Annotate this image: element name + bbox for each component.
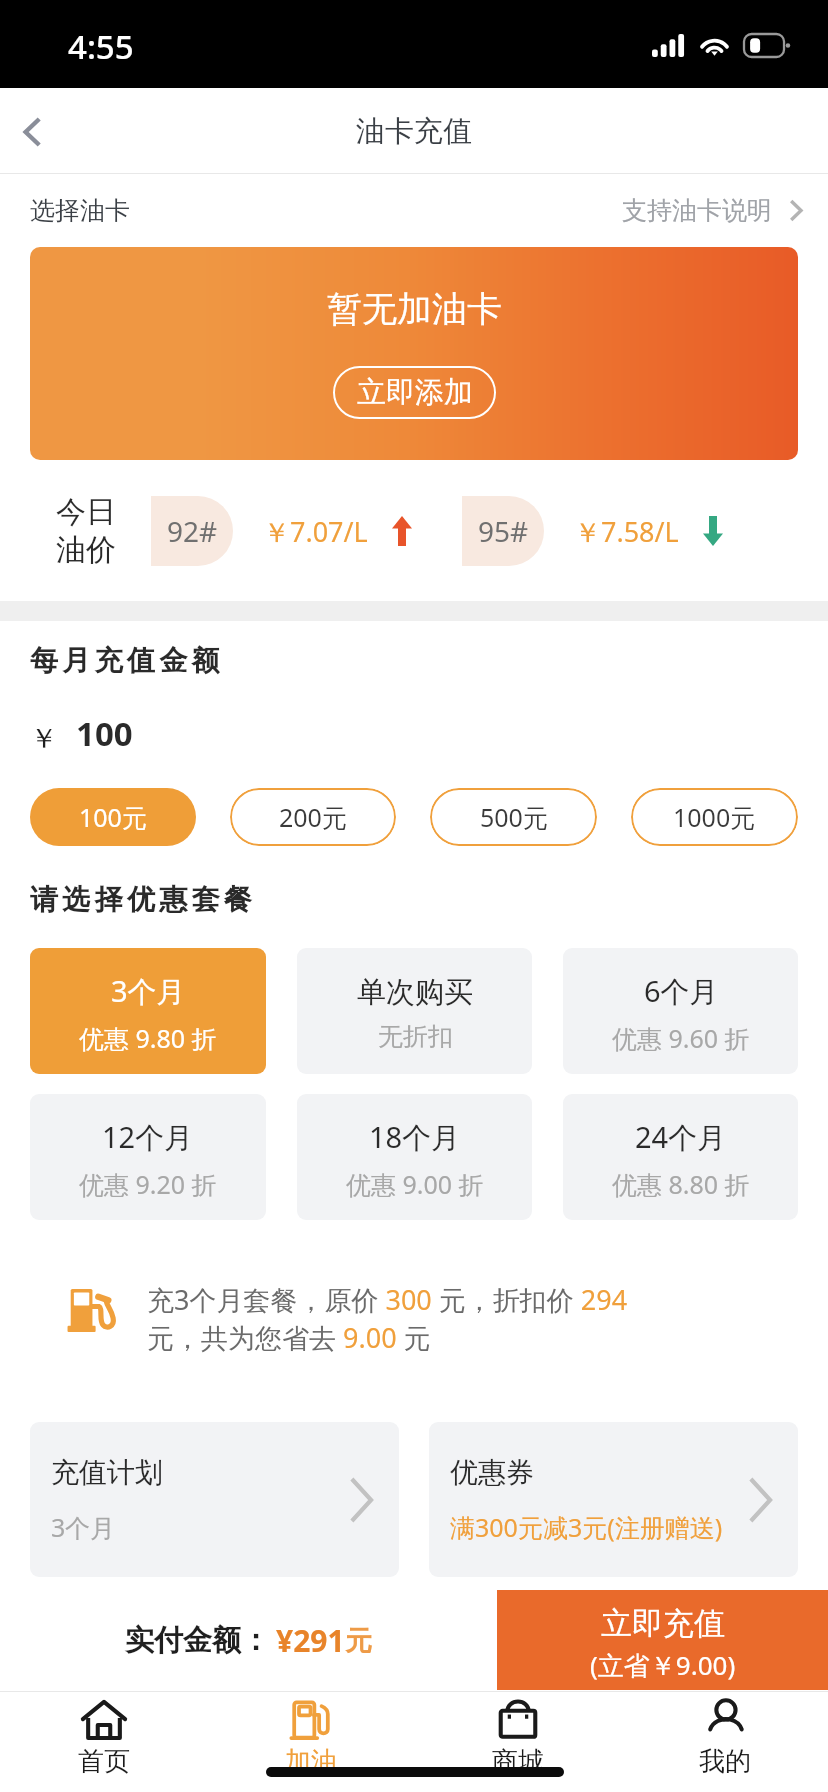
- button[interactable]: 商城: [414, 1692, 621, 1792]
- staticText: 每月充值金额: [30, 643, 224, 678]
- staticText: ￥7.58/L: [574, 513, 679, 550]
- staticText: 优惠 9.20 折: [79, 1167, 217, 1201]
- button[interactable]: 1000元: [631, 788, 798, 846]
- staticText: 优惠 9.00 折: [346, 1167, 484, 1201]
- staticText: 支持油卡说明: [622, 195, 772, 226]
- staticText: ￥: [30, 721, 58, 756]
- button[interactable]: 首页: [0, 1692, 207, 1792]
- staticText: (立省￥9.00): [590, 1647, 736, 1683]
- staticText: 充3个月套餐，原价 300 元，折扣价 294 元，共为您省去 9.00 元: [147, 1281, 633, 1356]
- staticText: 优惠 8.80 折: [612, 1167, 750, 1201]
- staticText: 今日: [56, 493, 116, 531]
- button[interactable]: 暂无加油卡: [30, 247, 798, 460]
- staticText: 暂无加油卡: [327, 287, 502, 331]
- button[interactable]: 18个月: [297, 1094, 532, 1220]
- staticText: 无折扣: [378, 1021, 453, 1052]
- button[interactable]: 优惠券: [429, 1422, 798, 1577]
- staticText: 我的: [699, 1745, 751, 1778]
- staticText: 优惠券: [450, 1455, 534, 1490]
- staticText: 立即添加: [357, 374, 473, 411]
- staticText: 4:55: [68, 24, 134, 69]
- staticText: 优惠 9.60 折: [612, 1021, 750, 1055]
- staticText: 单次购买: [357, 974, 473, 1011]
- button[interactable]: 500元: [430, 788, 597, 846]
- staticText: 立即充值: [601, 1604, 725, 1643]
- button[interactable]: 立即充值: [497, 1590, 828, 1690]
- staticText: 92#: [167, 512, 218, 550]
- staticText: 首页: [78, 1745, 130, 1778]
- staticText: 实付金额：: [125, 1622, 270, 1659]
- staticText: 1000元: [673, 800, 756, 834]
- staticText: 500元: [480, 800, 548, 834]
- staticText: 选择油卡: [30, 195, 130, 226]
- staticText: 100: [76, 711, 133, 756]
- staticText: 充值计划: [51, 1455, 163, 1490]
- button[interactable]: 200元: [230, 788, 396, 846]
- staticText: 24个月: [635, 1117, 727, 1157]
- staticText: 95#: [478, 512, 529, 550]
- staticText: 12个月: [102, 1117, 194, 1157]
- staticText: 油卡充值: [356, 113, 472, 150]
- staticText: 元: [345, 1624, 372, 1658]
- button[interactable]: 24个月: [563, 1094, 798, 1220]
- button[interactable]: 加油: [207, 1692, 414, 1792]
- staticText: 18个月: [369, 1117, 461, 1157]
- staticText: 油价: [56, 531, 116, 569]
- staticText: 优惠 9.80 折: [79, 1021, 217, 1055]
- staticText: 加油: [285, 1745, 337, 1778]
- staticText: 3个月: [51, 1510, 116, 1544]
- staticText: ¥291: [276, 1620, 345, 1661]
- button[interactable]: Back: [0, 88, 72, 174]
- staticText: 6个月: [644, 971, 719, 1011]
- button[interactable]: 3个月: [30, 948, 266, 1074]
- staticText: 200元: [279, 800, 347, 834]
- button[interactable]: 单次购买: [297, 948, 532, 1074]
- staticText: 满300元减3元(注册赠送): [450, 1510, 723, 1544]
- button[interactable]: 我的: [621, 1692, 828, 1792]
- button[interactable]: 6个月: [563, 948, 798, 1074]
- button[interactable]: 100元: [30, 788, 196, 846]
- button[interactable]: 12个月: [30, 1094, 266, 1220]
- staticText: 请选择优惠套餐: [30, 882, 257, 917]
- staticText: 3个月: [111, 971, 186, 1011]
- staticText: 商城: [492, 1745, 544, 1778]
- staticText: 100元: [79, 800, 147, 834]
- staticText: ￥7.07/L: [263, 513, 368, 550]
- button[interactable]: 充值计划: [30, 1422, 399, 1577]
- button[interactable]: 支持油卡说明: [622, 185, 802, 236]
- button[interactable]: 立即添加: [333, 366, 496, 419]
